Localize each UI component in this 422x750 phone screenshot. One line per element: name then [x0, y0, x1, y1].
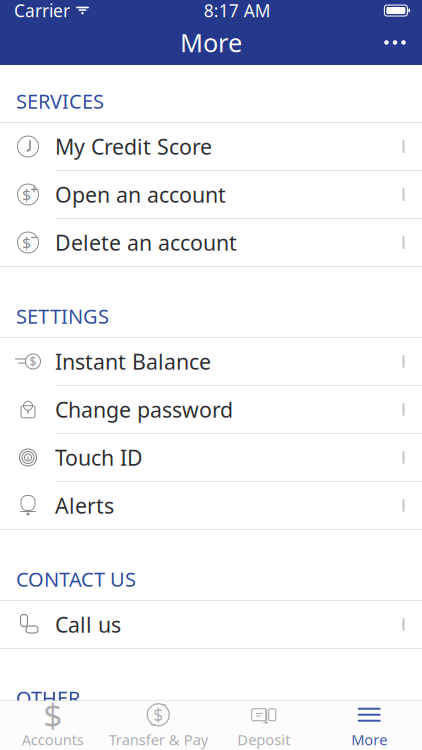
staticText: SETTINGS [16, 303, 109, 329]
staticText: Touch ID [55, 443, 143, 472]
staticText: Instant Balance [55, 347, 211, 376]
staticText: $ [153, 703, 163, 726]
staticText: $ [29, 353, 36, 369]
button[interactable]: More [316, 701, 422, 750]
button[interactable]: More options [368, 20, 422, 64]
button[interactable]: Change password [0, 386, 422, 433]
button[interactable]: Touch ID [0, 434, 422, 481]
button[interactable]: Alerts [0, 482, 422, 529]
button[interactable]: My Credit Score [0, 123, 422, 170]
button[interactable]: $ [0, 171, 422, 218]
staticText: 8:17 AM [204, 0, 271, 22]
staticText: SERVICES [16, 88, 104, 114]
staticText: Accounts [22, 730, 84, 749]
button[interactable]: Deposit [211, 701, 316, 750]
staticText: Deposit [237, 730, 290, 749]
button[interactable]: Legal [0, 720, 422, 750]
button[interactable]: $ [0, 701, 105, 750]
staticText: Delete an account [55, 228, 237, 257]
staticText: OTHER [16, 685, 80, 711]
staticText: Carrier [14, 0, 70, 22]
button[interactable]: $ [105, 701, 211, 750]
staticText: Change password [55, 395, 233, 424]
staticText: CONTACT US [16, 566, 136, 592]
staticText: More [351, 730, 387, 749]
button[interactable]: $ [0, 219, 422, 266]
button[interactable]: Call us [0, 601, 422, 648]
staticText: $ [22, 232, 31, 253]
staticText: $ [22, 184, 31, 205]
staticText: Legal [55, 729, 109, 750]
staticText: Transfer & Pay [109, 730, 208, 749]
staticText: My Credit Score [55, 132, 212, 161]
staticText: Call us [55, 610, 121, 639]
staticText: More [180, 26, 242, 59]
button[interactable]: $ [0, 338, 422, 385]
staticText: Open an account [55, 180, 226, 209]
staticText: $ [43, 693, 62, 737]
staticText: Alerts [55, 491, 114, 520]
